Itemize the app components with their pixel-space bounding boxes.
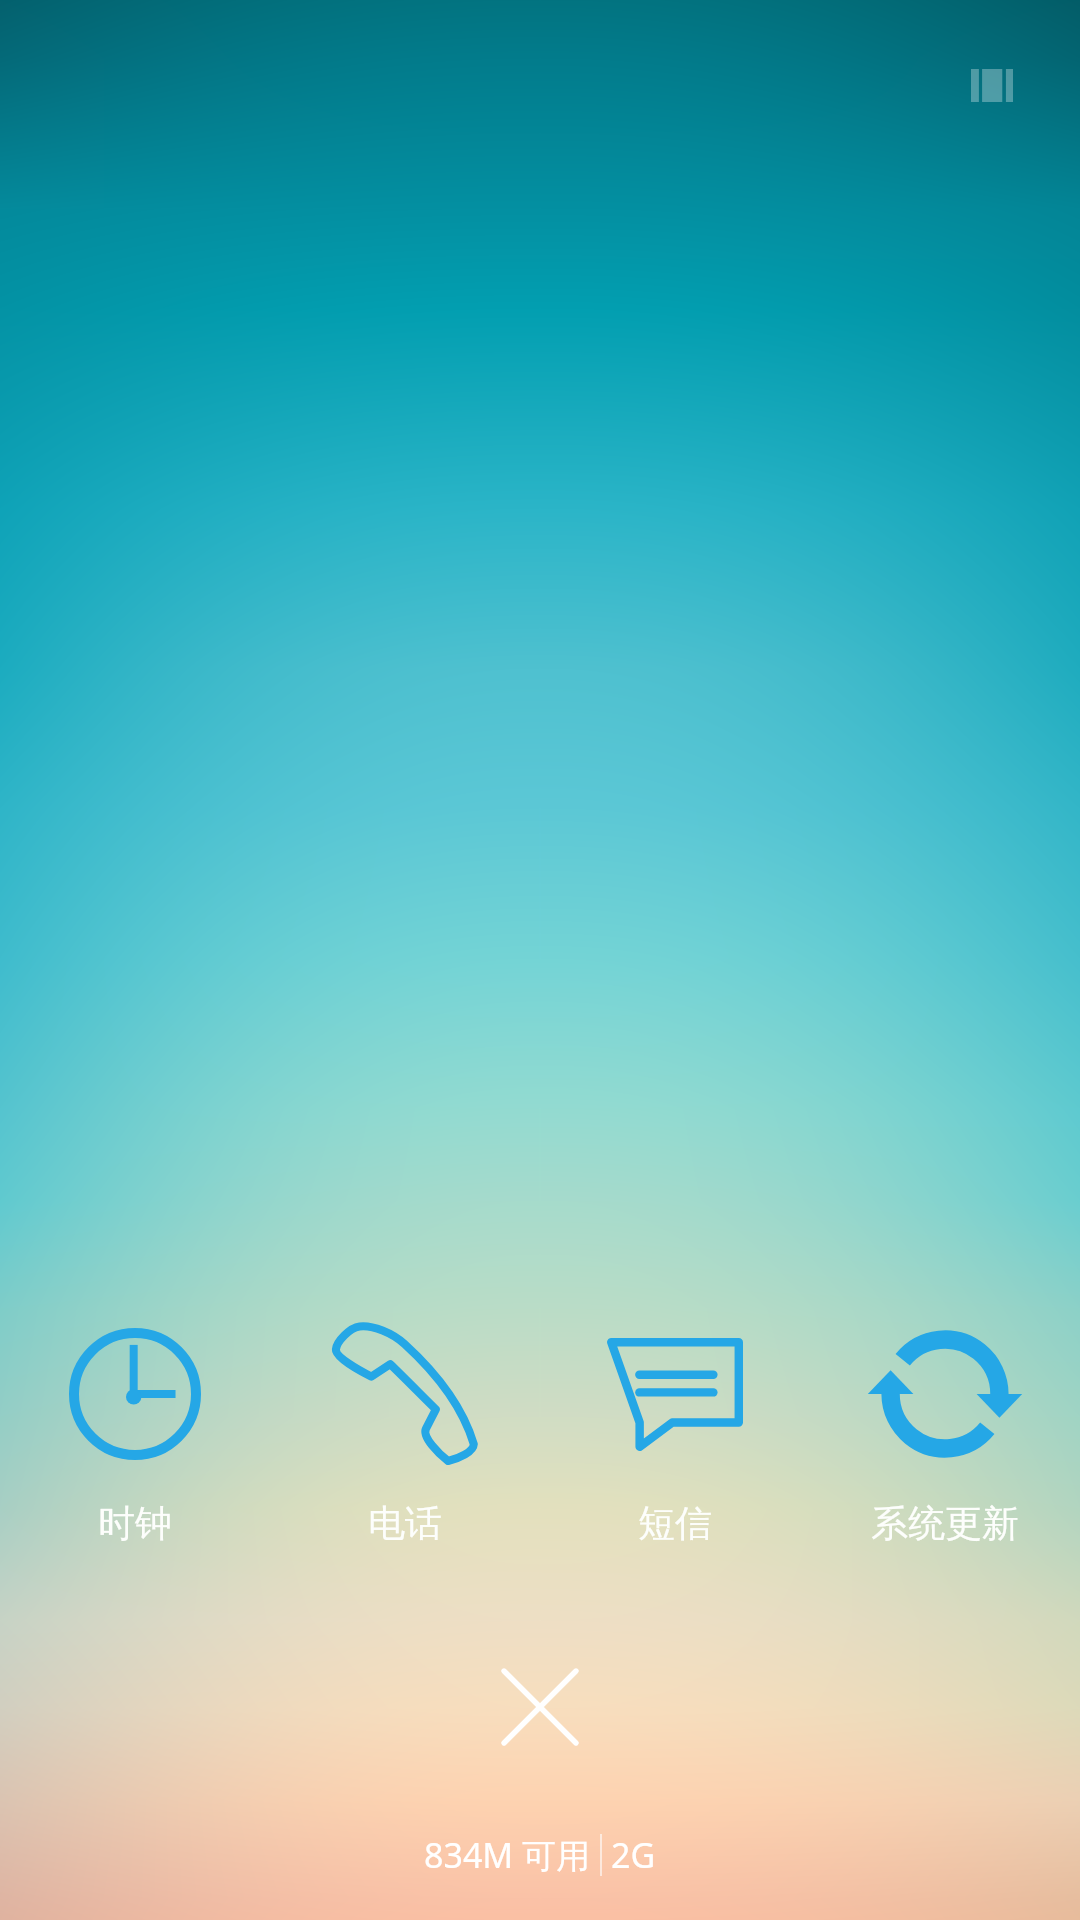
staticText: 时钟 — [98, 1500, 172, 1547]
button[interactable]: 系统更新 — [810, 1326, 1080, 1547]
staticText: 电话 — [368, 1500, 442, 1547]
staticText: 2G — [611, 1832, 656, 1878]
staticText: 系统更新 — [871, 1500, 1019, 1547]
button[interactable]: 电话 — [270, 1326, 540, 1547]
button[interactable]: Switch to card view — [952, 45, 1032, 125]
staticText: 短信 — [638, 1500, 712, 1547]
staticText: 834M 可用 — [424, 1832, 591, 1878]
button[interactable]: 时钟 — [0, 1326, 270, 1547]
button[interactable]: 短信 — [540, 1326, 810, 1547]
button[interactable]: Close all apps — [480, 1647, 600, 1767]
